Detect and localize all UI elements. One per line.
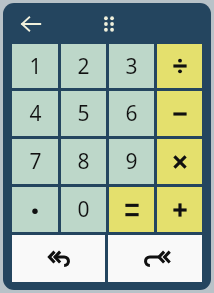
button[interactable]: Plus [157,187,202,232]
staticText: 9 [125,147,138,176]
button[interactable]: 4 [12,91,58,136]
staticText: 6 [125,99,138,128]
button[interactable]: Divide [157,44,202,88]
button[interactable]: Equals [109,187,154,232]
button[interactable]: 2 [61,44,106,88]
staticText: 1 [29,52,42,81]
button[interactable]: Redo [108,235,202,282]
button[interactable]: More options [94,9,124,39]
button[interactable]: 1 [12,44,58,88]
button[interactable]: Decimal point [12,187,58,232]
button[interactable]: Undo [12,235,105,282]
staticText: 8 [77,147,90,176]
button[interactable]: Back [16,9,46,39]
button[interactable]: 7 [12,139,58,184]
staticText: 4 [29,99,42,128]
button[interactable]: 3 [109,44,154,88]
button[interactable]: 6 [109,91,154,136]
button[interactable]: 8 [61,139,106,184]
button[interactable]: 5 [61,91,106,136]
staticText: 2 [77,52,90,81]
button[interactable]: 9 [109,139,154,184]
button[interactable]: Minus [157,91,202,136]
staticText: 0 [77,195,90,224]
button[interactable]: Multiply [157,139,202,184]
staticText: 3 [125,52,138,81]
staticText: 7 [29,147,42,176]
staticText: 5 [77,99,90,128]
button[interactable]: 0 [61,187,106,232]
